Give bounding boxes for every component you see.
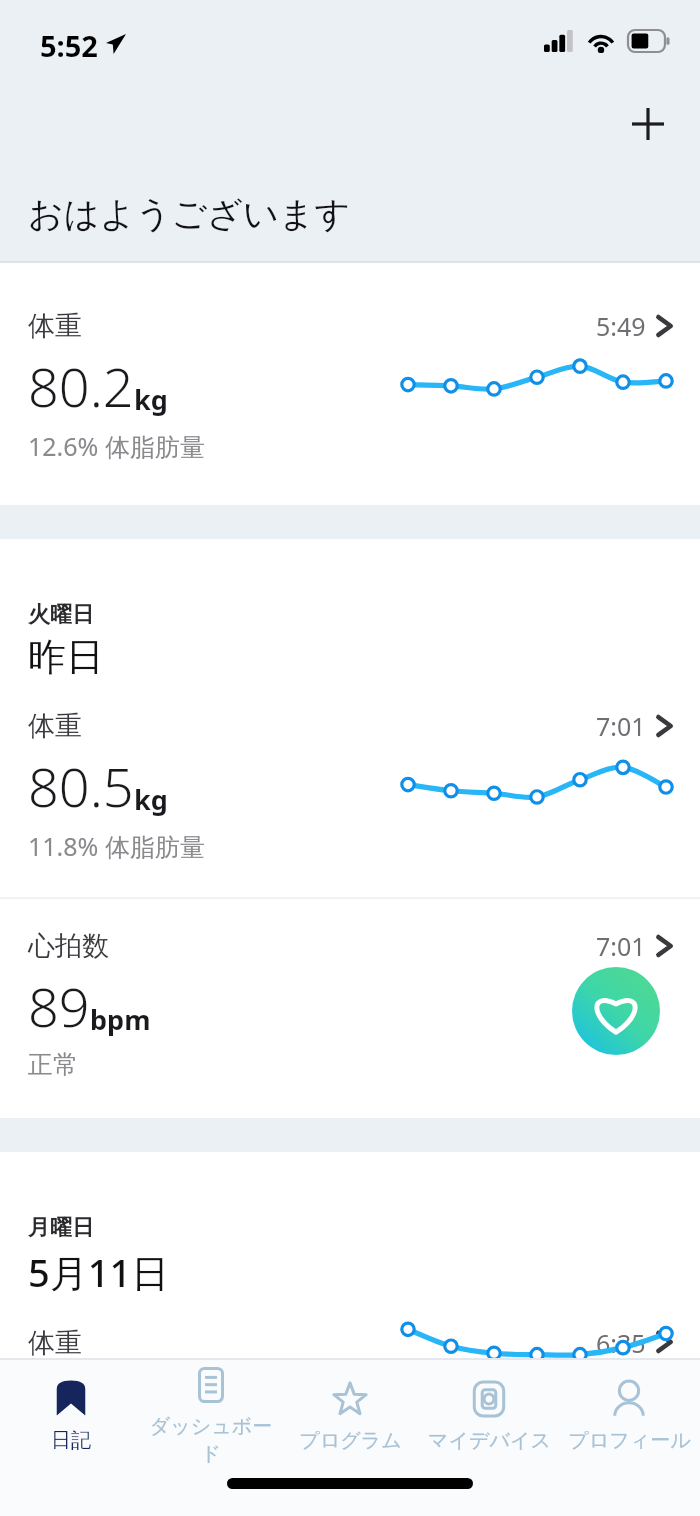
staticText: kg — [134, 381, 168, 418]
staticText: 月曜日 — [28, 1214, 94, 1242]
staticText: 心拍数 — [28, 929, 109, 963]
staticText: 日記 — [51, 1428, 91, 1453]
button[interactable]: 体重 — [0, 263, 700, 505]
button[interactable]: マイデバイス — [421, 1376, 557, 1453]
staticText: 80.2 — [28, 349, 134, 423]
staticText: bpm — [90, 1001, 151, 1038]
staticText: プロフィール — [568, 1428, 691, 1453]
staticText: 5月11日 — [28, 1246, 170, 1298]
button[interactable]: Add — [616, 92, 680, 156]
staticText: 6:35 — [596, 1326, 646, 1358]
staticText: 7:01 — [596, 709, 646, 743]
button[interactable]: 体重 — [0, 681, 700, 897]
staticText: 昨日 — [28, 633, 104, 681]
button[interactable]: プロフィール — [561, 1376, 697, 1453]
staticText: 89 — [28, 969, 90, 1043]
button[interactable]: 心拍数 — [0, 899, 700, 1118]
staticText: 12.6% 体脂肪量 — [28, 429, 205, 463]
button[interactable]: ダッシュボード — [143, 1362, 279, 1466]
staticText: おはようございます — [28, 192, 351, 236]
staticText: プログラム — [299, 1428, 402, 1453]
staticText: 7:01 — [596, 929, 646, 963]
staticText: 5:49 — [596, 309, 646, 343]
staticText: 火曜日 — [28, 601, 94, 629]
staticText: 体重 — [28, 1326, 82, 1358]
staticText: 5:52 — [40, 26, 98, 65]
staticText: kg — [134, 781, 168, 818]
staticText: 体重 — [28, 309, 82, 343]
button[interactable]: 体重 — [0, 1298, 700, 1358]
staticText: 体重 — [28, 709, 82, 743]
button[interactable]: プログラム — [282, 1376, 418, 1453]
staticText: ダッシュボード — [143, 1414, 279, 1466]
button[interactable]: 日記 — [3, 1376, 139, 1453]
staticText: マイデバイス — [428, 1428, 551, 1453]
staticText: 80.5 — [28, 749, 134, 823]
staticText: 11.8% 体脂肪量 — [28, 829, 205, 863]
staticText: 正常 — [28, 1049, 78, 1080]
